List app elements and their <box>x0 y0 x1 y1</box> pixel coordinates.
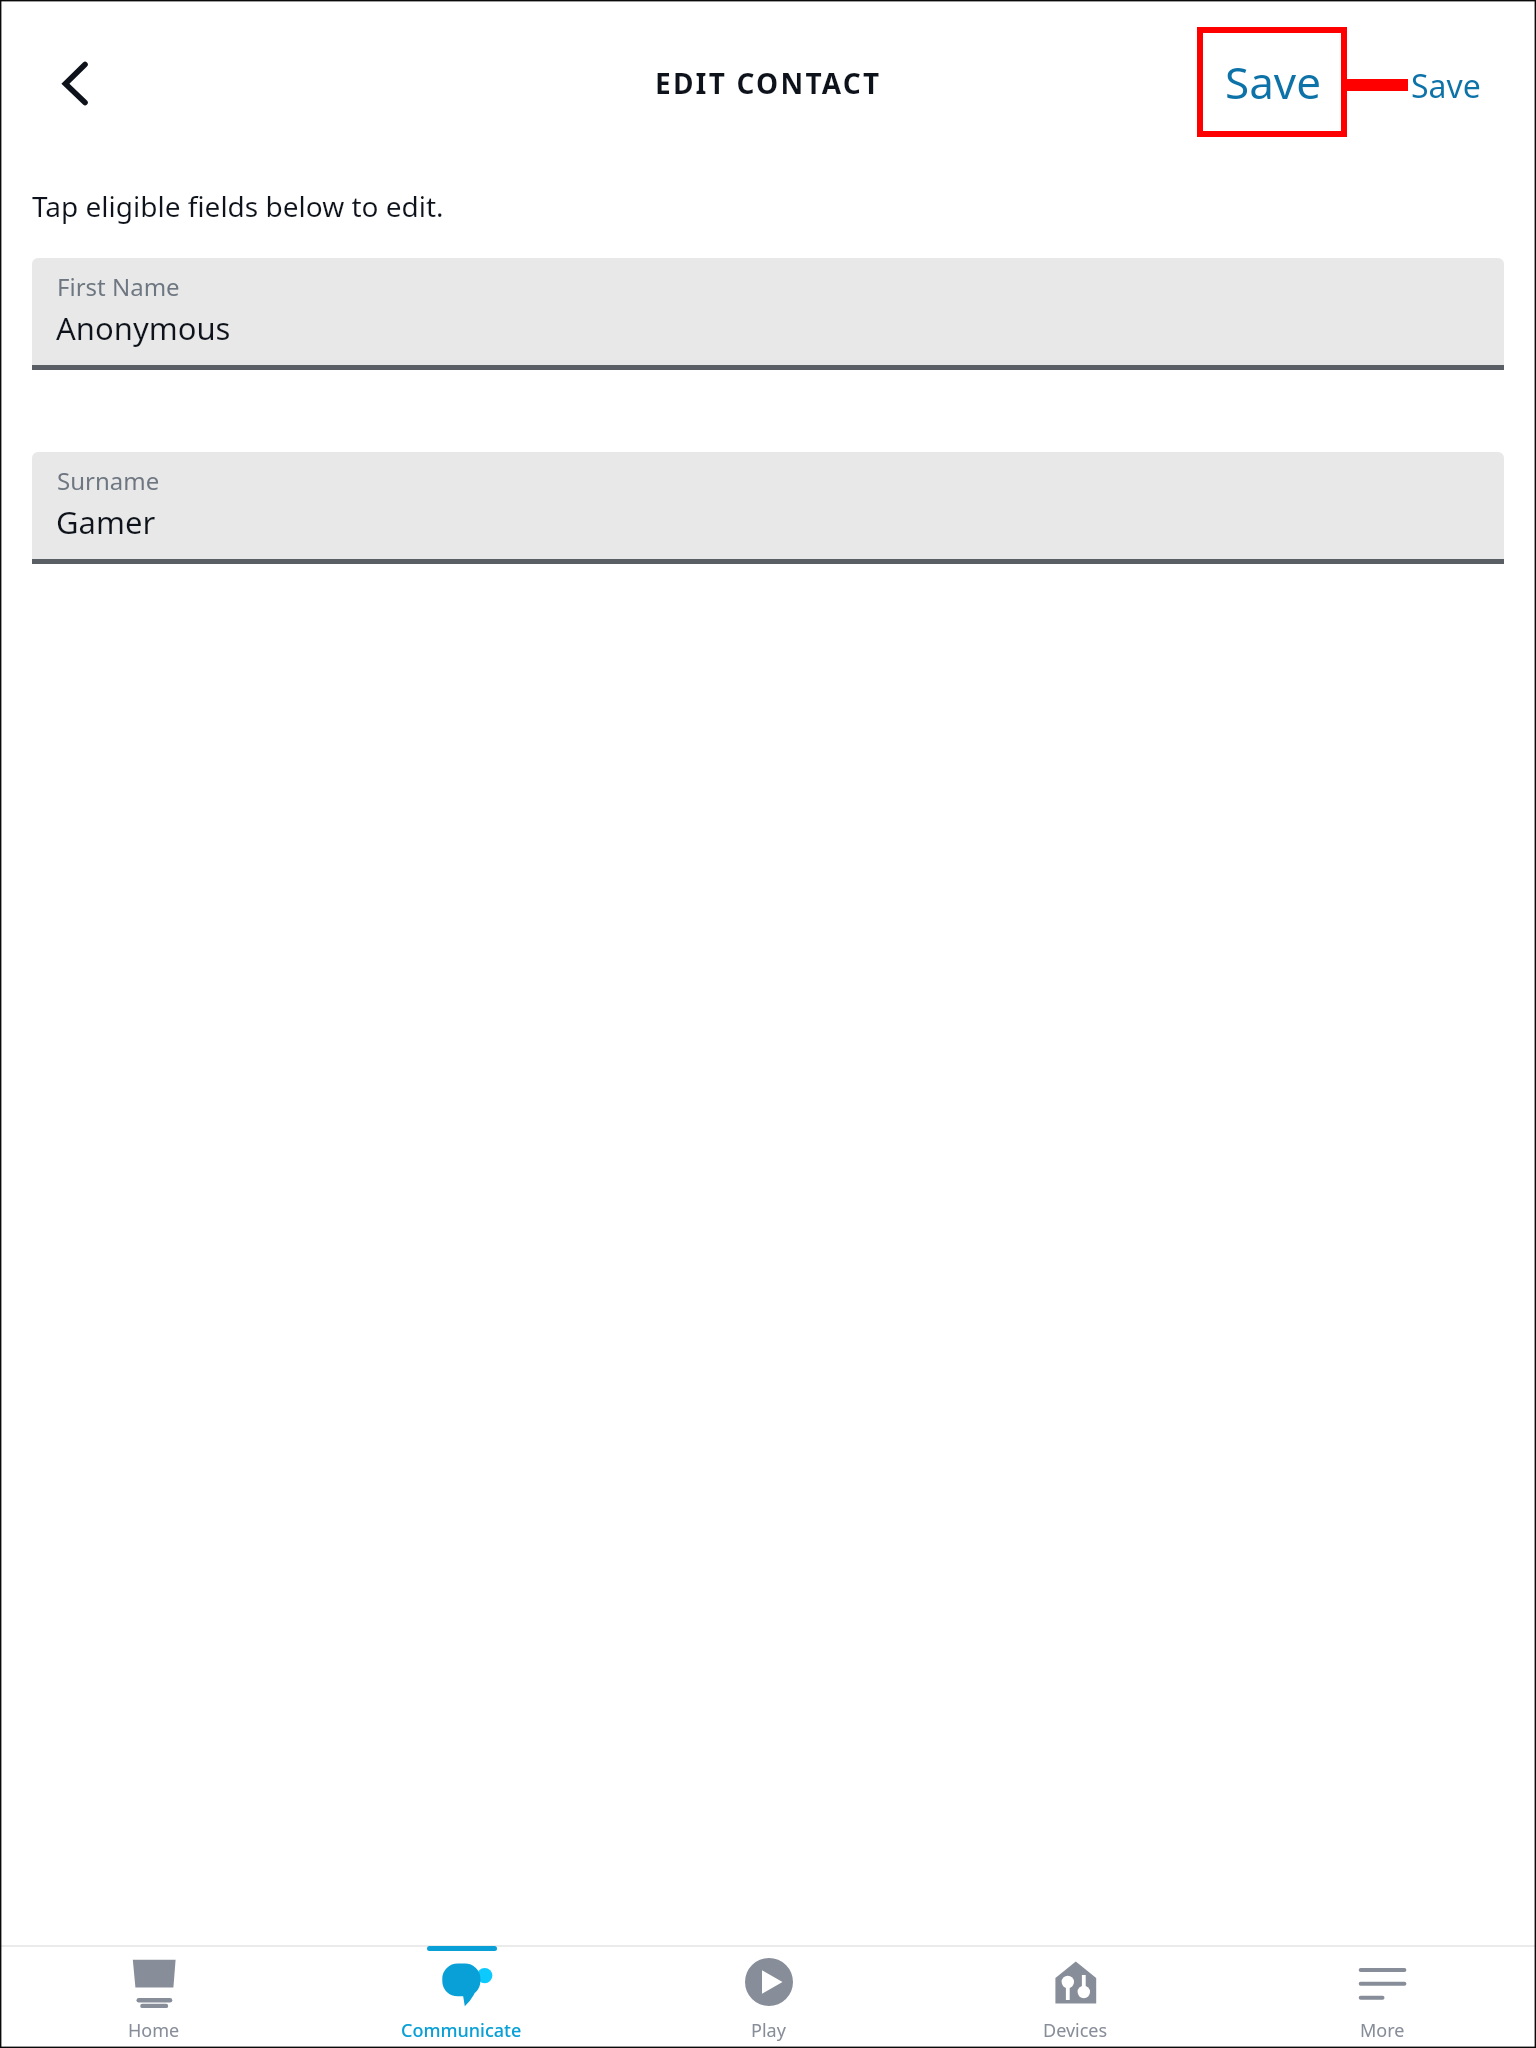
button[interactable]: Home <box>0 1947 308 2048</box>
staticText: Save <box>1225 52 1322 112</box>
button[interactable]: Devices <box>922 1947 1229 2048</box>
button[interactable]: More <box>1229 1947 1536 2048</box>
staticText: Gamer <box>56 501 156 543</box>
staticText: First Name <box>57 270 180 303</box>
button[interactable]: Back <box>34 42 118 126</box>
staticText: Tap eligible fields below to edit. <box>32 187 444 225</box>
staticText: More <box>1360 2018 1405 2043</box>
staticText: Surname <box>57 464 160 497</box>
button[interactable]: Play <box>615 1947 922 2048</box>
staticText: Home <box>128 2018 180 2043</box>
staticText: Save <box>1411 64 1481 108</box>
button[interactable]: Communicate <box>308 1947 615 2048</box>
button[interactable]: Save <box>1209 34 1338 130</box>
staticText: Communicate <box>401 2018 522 2043</box>
button[interactable]: First Name <box>32 258 1504 370</box>
button[interactable]: Surname <box>32 452 1504 564</box>
staticText: Anonymous <box>56 307 231 349</box>
staticText: Devices <box>1043 2018 1108 2043</box>
staticText: EDIT CONTACT <box>655 64 882 102</box>
staticText: Play <box>751 2018 786 2043</box>
